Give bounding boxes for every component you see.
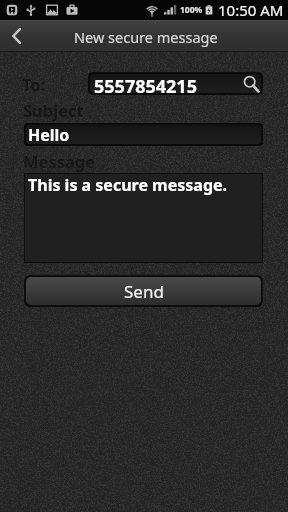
button[interactable]: Back (0, 20, 34, 52)
staticText: Message (23, 150, 96, 172)
staticText: This is a secure message. (28, 174, 228, 196)
button[interactable]: Hello (26, 125, 261, 144)
staticText: Send (124, 280, 164, 303)
staticText: 5557854215 (94, 74, 197, 93)
staticText: Hello (28, 125, 70, 143)
staticText: 100% (180, 4, 203, 16)
button[interactable]: This is a secure message. (25, 174, 262, 262)
staticText: 10:50 AM (218, 0, 284, 20)
button[interactable]: Send (26, 277, 261, 305)
staticText: To: (22, 73, 46, 95)
staticText: New secure message (74, 27, 218, 47)
staticText: Subject (23, 99, 84, 121)
button[interactable]: 5557854215 (90, 74, 261, 93)
button[interactable]: Search contacts (242, 75, 261, 93)
